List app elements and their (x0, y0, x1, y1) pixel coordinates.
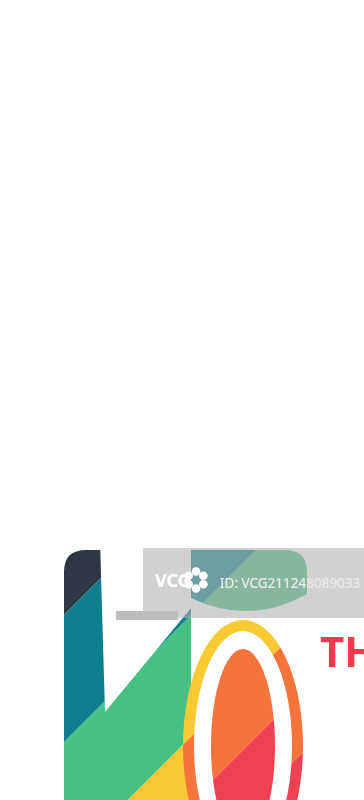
other: 10th anniversary logo (0, 0, 364, 800)
button[interactable]: 10th anniversary logo (0, 0, 364, 800)
